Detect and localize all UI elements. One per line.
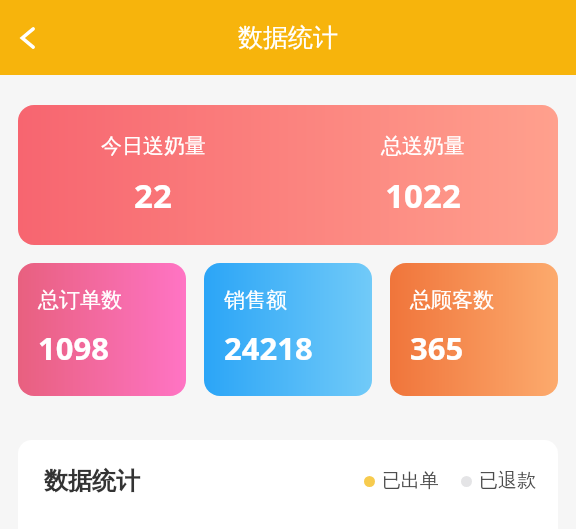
staticText: 销售额 — [224, 287, 287, 313]
button[interactable]: 总顾客数 — [390, 263, 558, 396]
staticText: 1098 — [38, 327, 109, 369]
staticText: 已退款 — [479, 469, 536, 493]
button[interactable]: 销售额 — [204, 263, 372, 396]
button[interactable]: 今日送奶量 — [18, 105, 558, 245]
staticText: 总订单数 — [38, 287, 122, 313]
staticText: 365 — [410, 327, 464, 369]
staticText: 总送奶量 — [381, 133, 465, 159]
staticText: 总顾客数 — [410, 287, 494, 313]
button[interactable]: 总订单数 — [18, 263, 186, 396]
staticText: 今日送奶量 — [101, 133, 206, 159]
button[interactable]: Back — [5, 15, 51, 61]
staticText: 数据统计 — [44, 466, 140, 496]
staticText: 22 — [134, 173, 172, 218]
button[interactable]: 已出单 — [364, 469, 439, 493]
button[interactable]: 已退款 — [461, 469, 536, 493]
staticText: 已出单 — [382, 469, 439, 493]
staticText: 数据统计 — [238, 22, 338, 53]
staticText: 1022 — [385, 173, 461, 218]
staticText: 24218 — [224, 327, 313, 369]
